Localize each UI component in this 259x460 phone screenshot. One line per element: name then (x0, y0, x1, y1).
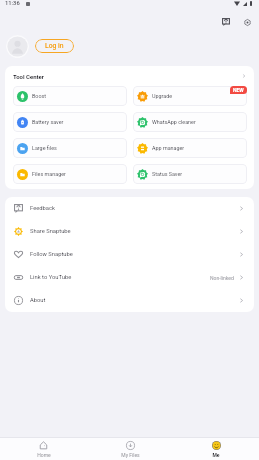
staticText: Non-linked (210, 275, 234, 281)
staticText: Large files (32, 145, 57, 151)
staticText: Tool Center (13, 73, 45, 80)
button[interactable]: Settings (239, 14, 255, 30)
staticText: App manager (152, 145, 185, 151)
button[interactable]: Follow Snaptube (5, 243, 254, 266)
staticText: Feedback (30, 205, 55, 212)
button[interactable]: Home (0, 438, 87, 460)
button[interactable]: App manager (133, 138, 247, 158)
staticText: Home (37, 452, 51, 458)
staticText: Log in (45, 42, 64, 50)
button[interactable]: Files manager (13, 164, 127, 184)
button[interactable]: Profile (6, 35, 29, 58)
staticText: 11:36 (5, 0, 20, 7)
staticText: NEW (233, 87, 244, 93)
staticText: Status Saver (152, 171, 183, 177)
staticText: About (30, 297, 46, 304)
button[interactable]: Upgrade (133, 86, 247, 106)
button[interactable]: WhatsApp cleaner (133, 112, 247, 132)
staticText: Share Snaptube (30, 228, 71, 235)
staticText: Files manager (32, 171, 66, 177)
button[interactable]: Boost (13, 86, 127, 106)
button[interactable]: Me (173, 438, 259, 460)
button[interactable]: Feedback (5, 197, 254, 220)
staticText: Link to YouTube (30, 274, 72, 281)
button[interactable]: Link to YouTube (5, 266, 254, 289)
button[interactable]: About (5, 289, 254, 312)
staticText: Battery saver (32, 119, 64, 125)
button[interactable]: Status Saver (133, 164, 247, 184)
button[interactable]: Tool Center (13, 66, 247, 86)
button[interactable]: Share Snaptube (5, 220, 254, 243)
button[interactable]: Large files (13, 138, 127, 158)
button[interactable]: My Files (87, 438, 173, 460)
staticText: Me (212, 452, 220, 458)
button[interactable]: Messages (218, 14, 234, 30)
button[interactable]: Battery saver (13, 112, 127, 132)
staticText: Upgrade (152, 93, 173, 99)
button[interactable]: Log in (35, 39, 74, 53)
staticText: Follow Snaptube (30, 251, 73, 258)
staticText: WhatsApp cleaner (152, 119, 196, 125)
staticText: Boost (32, 93, 47, 99)
staticText: My Files (121, 452, 140, 458)
